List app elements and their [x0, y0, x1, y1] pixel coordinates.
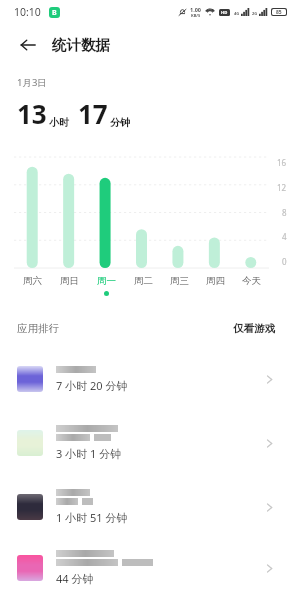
staticText: 统计数据	[52, 36, 110, 54]
button[interactable]: Back	[14, 31, 42, 59]
staticText: 周六	[23, 275, 42, 287]
staticText: 8	[282, 207, 287, 218]
staticText: HD	[221, 10, 228, 16]
other: Details	[257, 556, 281, 580]
staticText: 周日	[60, 275, 79, 287]
staticText: 分钟	[110, 116, 130, 129]
staticText: B	[52, 8, 57, 18]
staticText: 13	[17, 96, 47, 131]
other: Details	[257, 495, 281, 519]
staticText: 周四	[206, 275, 225, 287]
staticText: 周一	[97, 275, 116, 287]
staticText: 仅看游戏	[233, 322, 275, 335]
staticText: 12	[277, 182, 287, 193]
staticText: 16	[277, 157, 287, 168]
other: Details	[257, 431, 281, 455]
staticText: 1.00	[190, 6, 201, 13]
staticText: 今天	[242, 275, 261, 287]
staticText: 4	[282, 231, 287, 242]
staticText: 2G	[252, 11, 258, 16]
staticText: 85	[276, 9, 282, 15]
staticText: 应用排行	[17, 322, 59, 335]
button[interactable]: 7 小时 20 分钟	[0, 347, 295, 411]
button[interactable]: 44 分钟	[0, 539, 295, 596]
staticText: 1 小时 51 分钟	[56, 510, 128, 525]
button[interactable]: 3 小时 1 分钟	[0, 411, 295, 475]
staticText: 10:10	[14, 5, 41, 19]
staticText: 17	[78, 96, 108, 131]
staticText: KB/S	[191, 13, 201, 18]
staticText: 3 小时 1 分钟	[56, 446, 122, 461]
staticText: 4G	[234, 11, 240, 16]
staticText: 7 小时 20 分钟	[56, 378, 128, 393]
staticText: 周三	[170, 275, 189, 287]
staticText: 1月3日	[17, 76, 47, 89]
staticText: 小时	[49, 116, 69, 129]
button[interactable]: 1 小时 51 分钟	[0, 475, 295, 539]
staticText: 44 分钟	[56, 571, 94, 586]
other: Details	[257, 367, 281, 391]
staticText: 周二	[134, 275, 153, 287]
button[interactable]: 仅看游戏	[229, 318, 279, 339]
staticText: 0	[282, 256, 287, 267]
